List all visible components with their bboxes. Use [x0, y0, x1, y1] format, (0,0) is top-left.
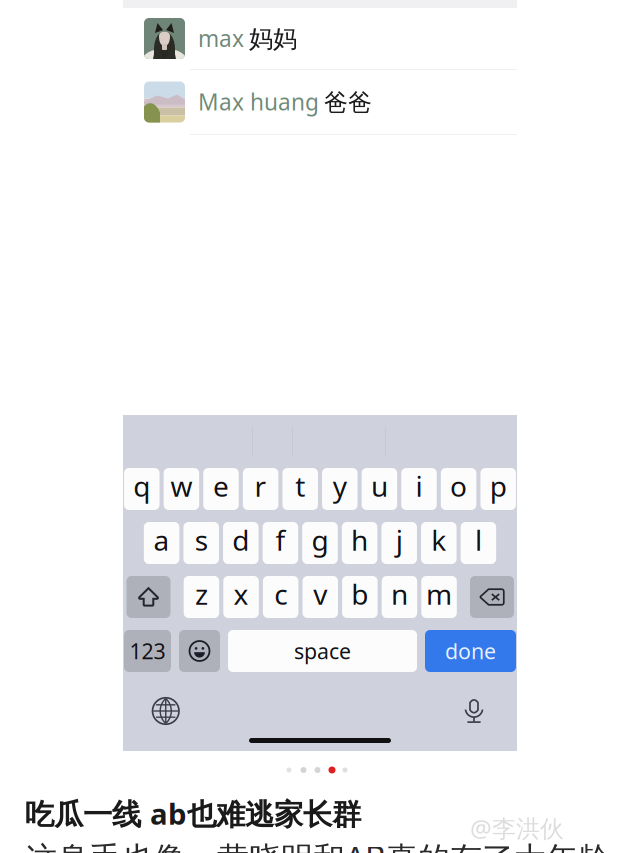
staticText: m [426, 575, 452, 613]
staticText: r [255, 467, 267, 505]
button[interactable]: z [184, 576, 219, 618]
button[interactable]: c [263, 576, 298, 618]
staticText: a [154, 521, 170, 559]
staticText: space [294, 637, 351, 665]
button[interactable]: u [362, 468, 397, 510]
button[interactable]: Change keyboard [152, 698, 179, 724]
staticText: 这身手也像，黄晓明和AB真的有了大年龄差距距距 [25, 836, 640, 853]
button[interactable]: w [164, 468, 199, 510]
staticText: x [233, 575, 248, 613]
staticText: @李洪伙 [470, 812, 564, 844]
staticText: f [275, 521, 285, 559]
button[interactable]: s [183, 522, 219, 564]
button[interactable]: a [144, 522, 179, 564]
staticText: b [351, 575, 368, 613]
staticText: done [445, 637, 496, 665]
button[interactable]: i [401, 468, 437, 510]
staticText: 爸爸 [324, 88, 372, 117]
staticText: u [371, 467, 388, 505]
button[interactable]: Shift [126, 576, 170, 618]
button[interactable]: Dictation [465, 697, 484, 725]
button[interactable]: max [123, 8, 517, 70]
staticText: z [195, 575, 208, 613]
staticText: p [490, 467, 507, 505]
button[interactable]: l [461, 522, 496, 564]
staticText: d [232, 521, 249, 559]
staticText: max [198, 23, 244, 53]
button[interactable]: x [223, 576, 259, 618]
button[interactable]: p [480, 468, 516, 510]
button[interactable]: q [124, 468, 159, 510]
button[interactable]: f [263, 522, 298, 564]
staticText: o [450, 467, 467, 505]
button[interactable]: j [381, 522, 417, 564]
button[interactable]: h [342, 522, 377, 564]
staticText: 妈妈 [249, 24, 297, 54]
staticText: y [333, 467, 347, 505]
staticText: Max huang [198, 87, 319, 117]
button[interactable]: Delete [470, 576, 514, 618]
staticText: 吃瓜一线 ab也难逃家长群 [25, 794, 361, 833]
button[interactable]: n [382, 576, 417, 618]
button[interactable]: e [203, 468, 239, 510]
staticText: h [351, 521, 368, 559]
button[interactable]: v [302, 576, 338, 618]
staticText: c [274, 575, 287, 613]
button[interactable]: 123 [124, 630, 171, 672]
staticText: t [295, 467, 305, 505]
button[interactable]: o [441, 468, 476, 510]
staticText: v [313, 575, 327, 613]
button[interactable]: g [302, 522, 338, 564]
button[interactable]: Max huang [123, 70, 517, 135]
staticText: i [415, 467, 422, 505]
staticText: w [170, 467, 192, 505]
staticText: q [133, 467, 150, 505]
button[interactable]: d [223, 522, 259, 564]
staticText: s [195, 521, 208, 559]
button[interactable]: t [282, 468, 318, 510]
button[interactable]: r [243, 468, 278, 510]
staticText: 123 [129, 637, 165, 665]
button[interactable]: m [421, 576, 457, 618]
button[interactable]: done [425, 630, 516, 672]
button[interactable]: b [342, 576, 378, 618]
staticText: l [475, 521, 482, 559]
staticText: e [213, 467, 229, 505]
button[interactable]: k [421, 522, 456, 564]
staticText: k [431, 521, 446, 559]
button[interactable]: y [322, 468, 357, 510]
button[interactable]: Emoji [179, 630, 220, 672]
staticText: n [391, 575, 408, 613]
button[interactable]: space [228, 630, 417, 672]
staticText: j [396, 521, 403, 559]
staticText: g [311, 521, 328, 559]
